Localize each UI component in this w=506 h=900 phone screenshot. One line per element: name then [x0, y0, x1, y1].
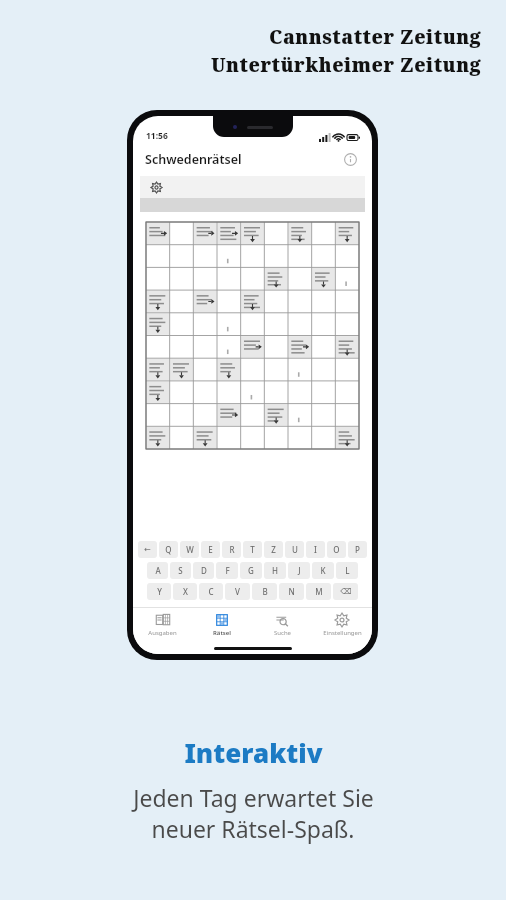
button[interactable]: Suche	[252, 608, 312, 642]
staticText: O	[333, 544, 340, 555]
staticText: D	[201, 565, 207, 576]
button[interactable]: L	[336, 562, 358, 579]
staticText: G	[248, 565, 254, 576]
button[interactable]: Ausgaben	[133, 608, 192, 642]
button[interactable]: U	[285, 541, 304, 558]
staticText: T	[250, 544, 255, 555]
button[interactable]: Info	[340, 149, 360, 169]
staticText: Interaktiv	[184, 735, 323, 770]
staticText: C	[208, 586, 214, 597]
staticText: Q	[165, 544, 172, 555]
button[interactable]: ⌫	[333, 583, 358, 600]
staticText: neuer Rätsel-Spaß.	[151, 813, 355, 844]
staticText: ←	[144, 545, 151, 554]
staticText: Suche	[274, 629, 291, 637]
button[interactable]: Rätsel	[192, 608, 252, 642]
staticText: X	[183, 586, 188, 597]
staticText: ⌫	[340, 587, 352, 596]
button[interactable]: J	[288, 562, 310, 579]
button[interactable]: A	[147, 562, 168, 579]
button[interactable]: Q	[159, 541, 178, 558]
staticText: F	[225, 565, 230, 576]
staticText: Jeden Tag erwartet Sie	[133, 782, 374, 813]
staticText: N	[288, 586, 295, 597]
button[interactable]	[146, 222, 359, 449]
button[interactable]: C	[199, 583, 223, 600]
staticText: B	[262, 586, 268, 597]
button[interactable]: X	[173, 583, 197, 600]
staticText: E	[208, 544, 213, 555]
staticText: S	[178, 565, 183, 576]
button[interactable]: M	[306, 583, 331, 600]
staticText: J	[298, 565, 301, 576]
button[interactable]: V	[225, 583, 250, 600]
staticText: W	[186, 544, 194, 555]
button[interactable]: T	[243, 541, 262, 558]
staticText: Rätsel	[213, 629, 231, 637]
staticText: Ausgaben	[148, 629, 177, 637]
button[interactable]: O	[327, 541, 346, 558]
button[interactable]: P	[348, 541, 367, 558]
staticText: Untertürkheimer Zeitung	[211, 52, 482, 78]
button[interactable]: N	[279, 583, 304, 600]
button[interactable]: Einstellungen	[312, 608, 372, 642]
staticText: P	[355, 544, 360, 555]
button[interactable]: ←	[138, 541, 157, 558]
staticText: H	[272, 565, 278, 576]
button[interactable]: S	[170, 562, 191, 579]
button[interactable]: W	[180, 541, 199, 558]
button[interactable]: Y	[147, 583, 171, 600]
staticText: L	[345, 565, 350, 576]
button[interactable]: G	[240, 562, 262, 579]
staticText: Schwedenrätsel	[145, 151, 242, 168]
button[interactable]: B	[252, 583, 277, 600]
staticText: A	[155, 565, 161, 576]
button[interactable]: Einstellungen	[146, 177, 166, 197]
staticText: V	[235, 586, 240, 597]
button[interactable]: I	[306, 541, 325, 558]
button[interactable]: R	[222, 541, 241, 558]
button[interactable]: H	[264, 562, 286, 579]
button[interactable]: E	[201, 541, 220, 558]
button[interactable]: K	[312, 562, 334, 579]
staticText: M	[315, 586, 323, 597]
staticText: U	[292, 544, 298, 555]
staticText: 11:56	[146, 130, 168, 142]
staticText: R	[229, 544, 235, 555]
button[interactable]: D	[193, 562, 214, 579]
button[interactable]: F	[216, 562, 238, 579]
button[interactable]: Z	[264, 541, 283, 558]
staticText: Cannstatter Zeitung	[269, 24, 482, 50]
staticText: K	[320, 565, 326, 576]
staticText: I	[314, 544, 317, 555]
staticText: Y	[157, 586, 162, 597]
staticText: Einstellungen	[323, 629, 362, 637]
staticText: Z	[271, 544, 276, 555]
